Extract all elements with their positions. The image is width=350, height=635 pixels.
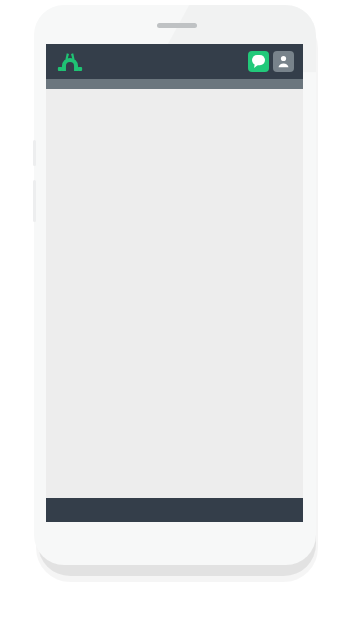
- button[interactable]: Messages: [248, 51, 269, 72]
- button[interactable]: Home: [56, 50, 84, 74]
- button[interactable]: Profile: [273, 51, 294, 72]
